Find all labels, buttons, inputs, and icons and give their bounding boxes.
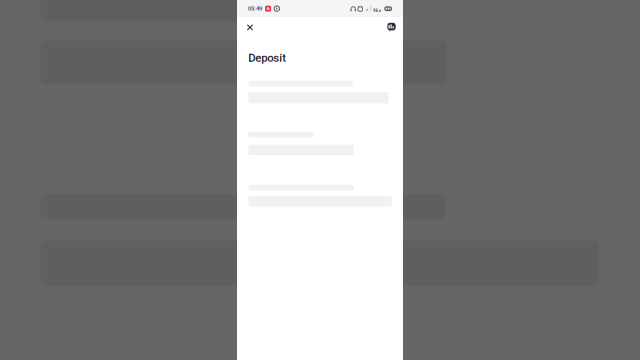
staticText: Deposit bbox=[248, 51, 286, 64]
button[interactable]: Support chat bbox=[379, 16, 403, 38]
staticText: 05:49 bbox=[248, 5, 262, 12]
button[interactable]: Close bbox=[238, 16, 262, 38]
